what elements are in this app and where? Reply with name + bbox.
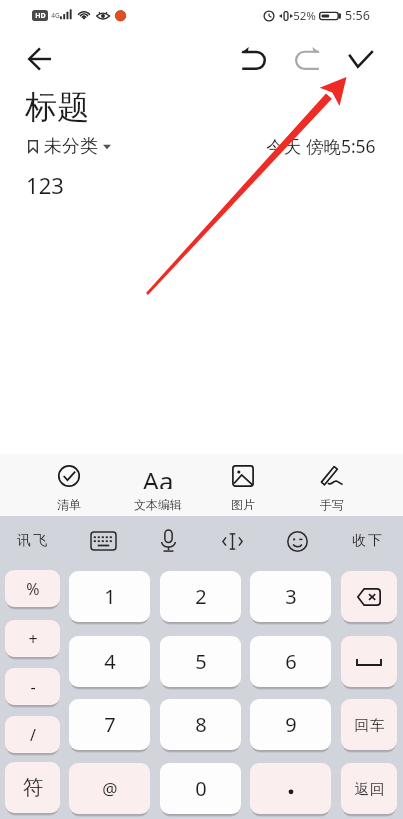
button[interactable]: - xyxy=(5,668,60,705)
staticText: 7 xyxy=(104,711,116,738)
staticText: 2 xyxy=(195,583,207,610)
staticText: 4G xyxy=(51,11,60,20)
button[interactable]: Move cursor xyxy=(211,526,254,557)
button[interactable]: 5 xyxy=(160,636,241,687)
button[interactable] xyxy=(250,763,331,814)
staticText: / xyxy=(30,724,36,746)
staticText: Aa xyxy=(142,463,174,489)
button[interactable]: % xyxy=(5,570,60,607)
button[interactable]: 清单 xyxy=(38,455,100,513)
staticText: 收下 xyxy=(351,532,383,550)
staticText: 9 xyxy=(285,711,297,738)
button[interactable]: 手写 xyxy=(301,455,363,513)
button[interactable] xyxy=(341,571,397,622)
button[interactable]: Keyboard layout xyxy=(81,526,126,556)
staticText: 文本编辑 xyxy=(134,497,182,512)
staticText: 回车 xyxy=(354,716,385,734)
button[interactable]: Save xyxy=(339,37,383,81)
staticText: 5 xyxy=(195,648,207,675)
button[interactable]: 收下 xyxy=(341,526,393,556)
staticText: 1 xyxy=(104,583,116,610)
staticText: 今天 傍晚5:56 xyxy=(266,134,376,158)
button[interactable]: 7 xyxy=(69,699,150,750)
staticText: @ xyxy=(102,777,118,800)
button[interactable]: Back xyxy=(17,37,61,81)
button[interactable]: 返回 xyxy=(341,763,397,814)
button[interactable]: Aa xyxy=(127,455,189,513)
staticText: 符 xyxy=(23,775,43,800)
button[interactable]: @ xyxy=(69,763,150,814)
staticText: 标题 xyxy=(25,87,89,127)
button[interactable]: 6 xyxy=(250,636,331,687)
button[interactable]: Undo xyxy=(231,37,275,81)
staticText: 0 xyxy=(195,775,207,802)
button[interactable]: 2 xyxy=(160,571,241,622)
staticText: 123 xyxy=(26,170,64,200)
button[interactable]: Voice input xyxy=(149,523,188,559)
button[interactable]: Redo xyxy=(285,37,329,81)
staticText: + xyxy=(28,628,38,650)
staticText: 52% xyxy=(293,8,316,24)
button[interactable]: 1 xyxy=(69,571,150,622)
button[interactable]: 4 xyxy=(69,636,150,687)
button[interactable]: 图片 xyxy=(212,455,274,513)
button[interactable]: 8 xyxy=(160,699,241,750)
staticText: 5:56 xyxy=(345,7,370,24)
button[interactable]: 讯飞 xyxy=(6,526,58,556)
staticText: % xyxy=(26,578,40,600)
staticText: 清单 xyxy=(57,497,81,512)
button[interactable]: 3 xyxy=(250,571,331,622)
staticText: 讯飞 xyxy=(16,532,48,550)
button[interactable]: 未分类 xyxy=(28,135,111,158)
button[interactable]: 回车 xyxy=(341,699,397,750)
staticText: 3 xyxy=(285,583,297,610)
staticText: 返回 xyxy=(354,780,385,798)
button[interactable] xyxy=(341,636,397,687)
staticText: 8 xyxy=(195,711,207,738)
staticText: HD xyxy=(35,11,46,21)
staticText: - xyxy=(30,676,36,698)
button[interactable]: Emoji xyxy=(277,525,318,558)
staticText: 手写 xyxy=(320,497,344,512)
button[interactable]: + xyxy=(5,620,60,657)
staticText: 6 xyxy=(285,648,297,675)
staticText: 4 xyxy=(104,648,116,675)
button[interactable]: 符 xyxy=(5,762,60,813)
button[interactable]: 9 xyxy=(250,699,331,750)
button[interactable]: / xyxy=(5,716,60,753)
staticText: 图片 xyxy=(231,497,255,512)
staticText: 未分类 xyxy=(44,135,98,158)
button[interactable]: 0 xyxy=(160,763,241,814)
